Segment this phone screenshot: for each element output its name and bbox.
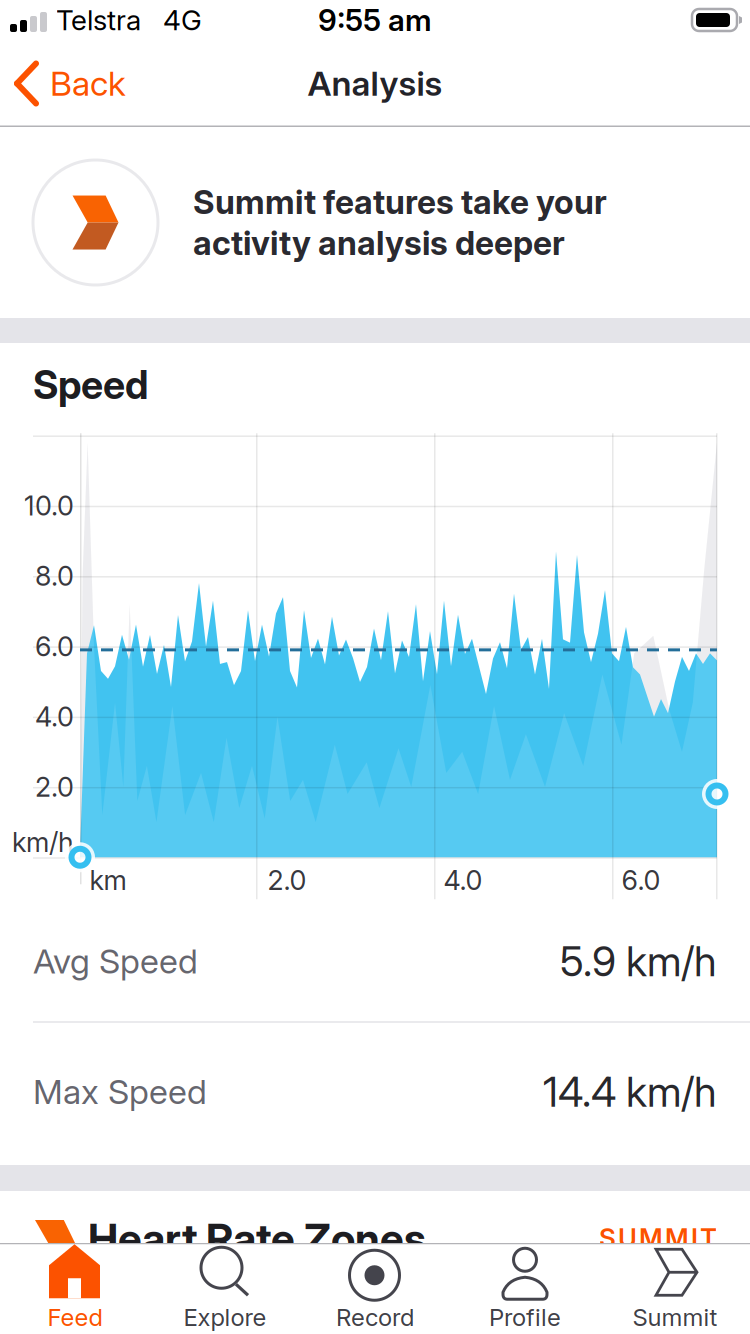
staticText: 6.0 [621,864,660,897]
staticText: Analysis [307,63,442,104]
staticText: km [89,864,126,897]
button[interactable]: Summit features take your [0,127,750,318]
staticText: 2.0 [35,771,74,803]
staticText: 6.0 [35,630,74,663]
button[interactable]: Record [300,1245,450,1333]
staticText: 4.0 [35,700,74,733]
staticText: SUMMIT [599,1222,717,1253]
button[interactable]: SUMMIT [557,1222,717,1253]
button[interactable]: Profile [450,1245,600,1333]
staticText: Summit features take your [193,182,607,222]
button[interactable]: Summit [600,1245,750,1333]
staticText: Feed [47,1303,102,1332]
staticText: km/h [12,826,74,859]
staticText: 2.0 [267,864,306,897]
button[interactable]: Feed [0,1245,150,1333]
staticText: Heart Rate Zones [88,1213,426,1264]
staticText: Avg Speed [33,941,198,982]
staticText: activity analysis deeper [193,223,565,263]
staticText: 4G [163,3,202,37]
button[interactable]: Explore [150,1245,300,1333]
staticText: 9:55 am [318,2,432,38]
staticText: 14.4 km/h [543,1067,717,1116]
staticText: 5.9 km/h [560,936,717,986]
staticText: 10.0 [24,489,74,522]
staticText: 8.0 [35,560,74,592]
staticText: Summit [632,1303,717,1332]
staticText: Record [336,1303,414,1332]
staticText: Max Speed [33,1071,207,1112]
staticText: Back [50,63,126,104]
button[interactable]: Back [0,60,126,106]
staticText: Explore [183,1303,266,1332]
staticText: 4.0 [443,864,482,897]
staticText: Profile [489,1303,561,1332]
staticText: Telstra [56,3,141,37]
staticText: Speed [33,361,148,408]
